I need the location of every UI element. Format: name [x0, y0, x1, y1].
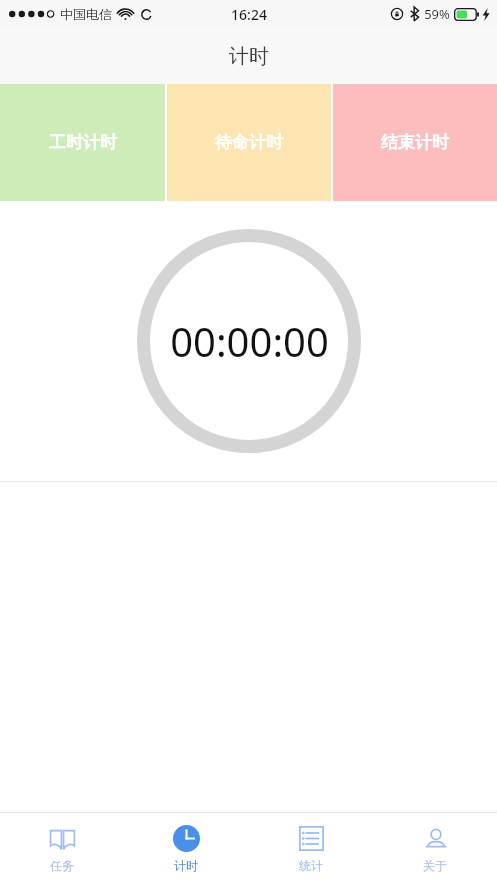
- staticText: 59%: [424, 5, 450, 23]
- button[interactable]: 任务: [0, 813, 124, 883]
- staticText: 00:00:00: [170, 314, 329, 368]
- button[interactable]: 关于: [373, 813, 497, 883]
- button[interactable]: 结束计时: [333, 84, 497, 201]
- button[interactable]: 统计: [249, 813, 373, 883]
- button[interactable]: 计时: [124, 813, 248, 883]
- staticText: 任务: [50, 858, 74, 873]
- button[interactable]: 待命计时: [167, 84, 331, 201]
- staticText: 工时计时: [49, 132, 117, 153]
- staticText: 结束计时: [381, 132, 449, 153]
- staticText: 待命计时: [215, 132, 283, 153]
- staticText: 统计: [299, 858, 323, 873]
- staticText: 计时: [174, 858, 198, 873]
- staticText: 关于: [423, 858, 447, 873]
- staticText: 16:24: [231, 5, 267, 24]
- button[interactable]: 工时计时: [0, 84, 165, 201]
- staticText: 计时: [229, 44, 269, 69]
- staticText: 中国电信: [60, 6, 112, 22]
- button[interactable]: Timer: [137, 229, 361, 453]
